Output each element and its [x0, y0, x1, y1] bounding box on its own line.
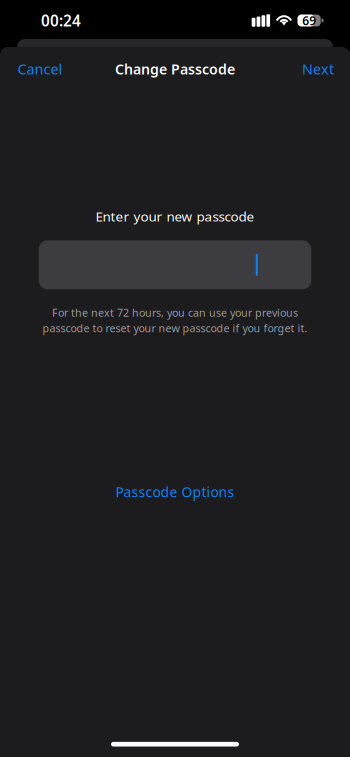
staticText: 69: [302, 12, 316, 29]
button[interactable]: Passcode Options: [105, 476, 244, 507]
staticText: Cancel: [17, 59, 62, 79]
staticText: Passcode Options: [115, 482, 234, 501]
staticText: For the next 72 hours, you can use your …: [52, 305, 298, 320]
button[interactable]: Cancel: [12, 52, 67, 86]
staticText: Change Passcode: [115, 59, 235, 79]
staticText: passcode to reset your new passcode if y…: [42, 321, 307, 335]
button[interactable]: New passcode: [39, 240, 311, 289]
button[interactable]: Next: [297, 52, 339, 86]
staticText: 00:24: [41, 10, 81, 31]
staticText: Next: [302, 59, 334, 79]
staticText: Enter your new passcode: [95, 207, 254, 225]
